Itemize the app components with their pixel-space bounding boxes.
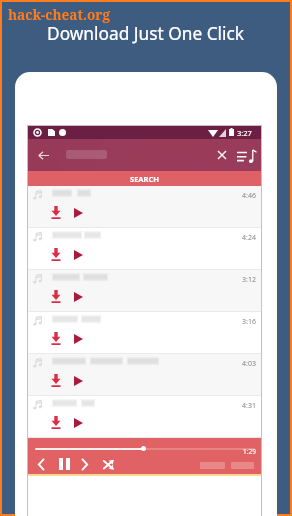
staticText: 4:03 (242, 359, 256, 369)
button[interactable]: 3:16 (28, 312, 261, 354)
button[interactable]: Playlist (232, 142, 258, 168)
button[interactable]: Play (70, 247, 86, 263)
staticText: 3:16 (242, 317, 256, 327)
staticText: SEARCH (130, 174, 159, 184)
staticText: hack-cheat.org (8, 5, 110, 24)
button[interactable]: Download (48, 246, 64, 262)
button[interactable]: Play (70, 373, 86, 389)
button[interactable]: Back (33, 145, 53, 165)
button[interactable]: Download (48, 330, 64, 346)
staticText: 4:31 (242, 401, 256, 411)
staticText: 4:46 (242, 191, 256, 201)
button[interactable]: 4:46 (28, 186, 261, 228)
staticText: 3:27 (237, 128, 252, 138)
staticText: Download Just One Click (47, 22, 245, 46)
button[interactable]: 4:24 (28, 228, 261, 270)
button[interactable]: Pause (56, 456, 72, 472)
button[interactable]: Play (70, 331, 86, 347)
button[interactable]: Download (48, 414, 64, 430)
staticText: 1:29 (243, 447, 256, 456)
button[interactable]: Play (70, 205, 86, 221)
button[interactable]: 4:03 (28, 354, 261, 396)
button[interactable]: Close (210, 143, 234, 167)
button[interactable]: 3:12 (28, 270, 261, 312)
button[interactable]: Play (70, 415, 86, 431)
button[interactable]: SEARCH (28, 171, 261, 186)
button[interactable]: Download (48, 204, 64, 220)
button[interactable]: 4:31 (28, 396, 261, 438)
button[interactable]: Download (48, 288, 64, 304)
button[interactable]: Next (77, 456, 93, 472)
button[interactable]: Shuffle (100, 456, 116, 472)
button[interactable]: Download (48, 372, 64, 388)
staticText: 3:12 (242, 275, 256, 285)
staticText: 4:24 (242, 233, 256, 243)
button[interactable]: Previous (33, 456, 49, 472)
button[interactable]: Play (70, 289, 86, 305)
